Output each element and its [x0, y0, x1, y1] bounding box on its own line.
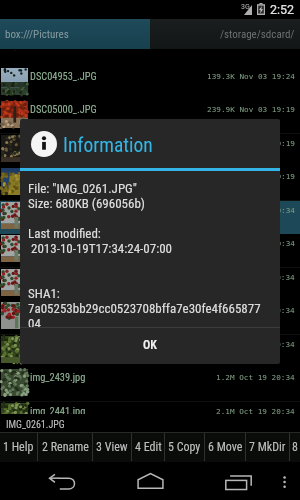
staticText: 5 Copy	[168, 440, 201, 454]
button[interactable]: DSC04953_.JPG	[0, 67, 300, 101]
staticText: 210.4K Nov 03 19:19	[207, 172, 295, 181]
button[interactable]: DSC05014_.JPG	[0, 167, 300, 201]
button[interactable]: IMG_0259.JPG	[0, 201, 300, 235]
staticText: 2013-10-19T17:34:24-07:00	[28, 241, 173, 256]
staticText: 3 View	[96, 440, 128, 454]
staticText: 139.3K Nov 03 19:24	[207, 72, 295, 81]
button[interactable]: img_2441.jpg	[0, 402, 300, 436]
staticText: 3G	[241, 3, 250, 11]
staticText: /storage/sdcard/	[220, 28, 295, 41]
staticText: IMG_0261.JPG	[6, 419, 65, 431]
staticText: 7a05253bb29cc0523708bffa7e30fe4f665877	[28, 301, 261, 316]
button[interactable]: 6 Move	[205, 432, 245, 462]
button[interactable]: Home	[137, 473, 164, 489]
staticText: IMG_0259.JPG	[30, 204, 91, 216]
staticText: 2 Rename	[42, 440, 89, 454]
button[interactable]: 3 View	[93, 432, 131, 462]
staticText: 4 Edit	[135, 440, 162, 454]
staticText: img_2435.jpg	[30, 304, 86, 316]
button[interactable]: 2 Rename	[38, 432, 92, 462]
button[interactable]: More options	[276, 468, 293, 494]
staticText: DSC05012_.JPG	[30, 137, 97, 149]
staticText: DSC05000_.JPG	[30, 103, 97, 115]
staticText: Information	[63, 134, 153, 157]
staticText: 2.2M Oct 19 20:34	[216, 306, 295, 315]
staticText: img_2439.jpg	[30, 371, 86, 383]
staticText: OK	[143, 338, 157, 352]
staticText: 2.7M Oct 19 20:34	[216, 340, 295, 349]
staticText: 181.7K Nov 03 19:19	[207, 139, 295, 148]
button[interactable]: 1 Help	[0, 432, 37, 462]
button[interactable]: DSC05000_.JPG	[0, 100, 300, 134]
staticText: 6 Move	[208, 440, 243, 454]
button[interactable]: 7 MkDir	[246, 432, 289, 462]
button[interactable]: img_2439.jpg	[0, 368, 300, 402]
staticText: 7 MkDir	[249, 440, 286, 454]
staticText: 1 Help	[3, 440, 34, 454]
button[interactable]: /storage/sdcard/	[150, 19, 300, 49]
button[interactable]: 5 Copy	[165, 432, 204, 462]
staticText: 2:52	[270, 2, 295, 17]
staticText: 239.9K Nov 03 19:19	[207, 105, 295, 114]
button[interactable]: 8	[290, 432, 300, 462]
button[interactable]: 4 Edit	[132, 432, 164, 462]
staticText: 1.9M Oct 19 20:34	[216, 273, 295, 282]
staticText: DSC04953_.JPG	[30, 70, 97, 82]
button[interactable]: box:///Pictures	[0, 19, 150, 49]
staticText: img_2441.jpg	[30, 405, 86, 417]
staticText: IMG_0261.JPG	[30, 237, 91, 249]
button[interactable]: OK	[20, 328, 280, 364]
button[interactable]: DSC05012_.JPG	[0, 134, 300, 168]
staticText: 8	[292, 440, 298, 454]
staticText: 1.2M Oct 19 20:34	[216, 373, 295, 382]
staticText: box:///Pictures	[5, 28, 69, 41]
staticText: Last modified:	[28, 226, 101, 241]
staticText: SHA1:	[28, 286, 60, 301]
staticText: 04	[28, 316, 41, 331]
staticText: DSC05014_.JPG	[30, 170, 97, 182]
staticText: 541.1K Oct 19 20:34	[207, 206, 295, 215]
button[interactable]: Back	[49, 474, 76, 490]
button[interactable]: Recent apps	[225, 474, 252, 490]
staticText: 2.1M Oct 19 20:34	[216, 407, 295, 416]
staticText: File: "IMG_0261.JPG"	[28, 181, 137, 196]
staticText: 680.0K Oct 19 20:34	[207, 239, 295, 248]
staticText: Size: 680KB (696056b)	[28, 196, 146, 211]
button[interactable]: img_2437.jpg	[0, 335, 300, 369]
button[interactable]: img_2435.jpg	[0, 301, 300, 335]
button[interactable]: img_2433.jpg	[0, 268, 300, 302]
button[interactable]: IMG_0261.JPG	[0, 234, 300, 268]
